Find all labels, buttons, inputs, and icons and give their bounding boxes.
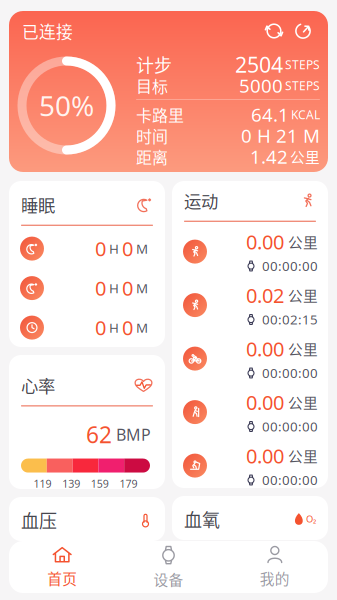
staticText: 时间 (136, 124, 168, 147)
staticText: 公里 (290, 146, 320, 167)
staticText: 0 (122, 235, 133, 262)
staticText: M (133, 279, 148, 297)
staticText: 0 (95, 275, 106, 301)
staticText: 心率 (21, 373, 55, 398)
button[interactable]: 我的 (222, 543, 328, 591)
staticText: 119 (34, 477, 52, 491)
staticText: 公里 (288, 445, 318, 466)
staticText: 0 (122, 314, 133, 341)
staticText: 我的 (260, 567, 290, 589)
staticText: 0.00 (246, 389, 284, 416)
button[interactable]: 设备 (115, 543, 222, 591)
staticText: 睡眠 (21, 192, 55, 217)
staticText: 159 (91, 477, 109, 491)
staticText: 公里 (288, 392, 318, 413)
staticText: 2504 (235, 50, 283, 79)
staticText: 0.00 (246, 228, 284, 255)
staticText: 0.00 (246, 335, 284, 362)
staticText: 00:00:00 (262, 364, 318, 382)
staticText: 0 (122, 275, 133, 301)
staticText: 0 (95, 235, 106, 262)
staticText: 00:00:00 (262, 471, 318, 489)
staticText: 距离 (136, 145, 168, 168)
staticText: 139 (62, 477, 80, 491)
staticText: 00:02:15 (262, 310, 318, 328)
button[interactable]: 同步 (289, 18, 317, 44)
button[interactable]: 刷新 (259, 18, 289, 44)
staticText: STEPS (285, 77, 320, 93)
staticText: 50% (39, 87, 94, 124)
staticText: BMP (112, 424, 151, 445)
staticText: 目标 (136, 74, 168, 97)
staticText: 0 H 21 M (241, 123, 320, 148)
staticText: 62 (86, 419, 112, 450)
staticText: 卡路里 (136, 103, 184, 126)
staticText: 设备 (153, 568, 183, 590)
staticText: H (106, 319, 122, 336)
staticText: 0.00 (246, 442, 284, 469)
staticText: 计步 (136, 51, 172, 78)
staticText: 已连接 (22, 19, 73, 43)
staticText: 公里 (288, 285, 318, 306)
staticText: H (106, 240, 122, 257)
staticText: 血压 (21, 507, 57, 533)
staticText: 00:00:00 (262, 257, 318, 275)
staticText: 00:00:00 (262, 417, 318, 435)
staticText: 0.02 (246, 282, 284, 309)
staticText: 运动 (184, 188, 218, 213)
staticText: 0 (95, 314, 106, 341)
staticText: STEPS (285, 56, 320, 72)
staticText: 血氧 (184, 506, 220, 532)
button[interactable]: 首页 (9, 543, 115, 591)
staticText: M (133, 240, 148, 257)
staticText: O₂ (306, 513, 316, 525)
staticText: 首页 (47, 567, 77, 589)
staticText: 公里 (288, 231, 318, 252)
staticText: 179 (119, 477, 137, 491)
staticText: H (106, 279, 122, 297)
staticText: KCAL (291, 106, 320, 122)
staticText: 64.1 (251, 102, 289, 127)
staticText: 5000 (239, 73, 283, 98)
staticText: M (133, 319, 148, 336)
staticText: 公里 (288, 338, 318, 359)
staticText: 1.42 (250, 144, 288, 169)
